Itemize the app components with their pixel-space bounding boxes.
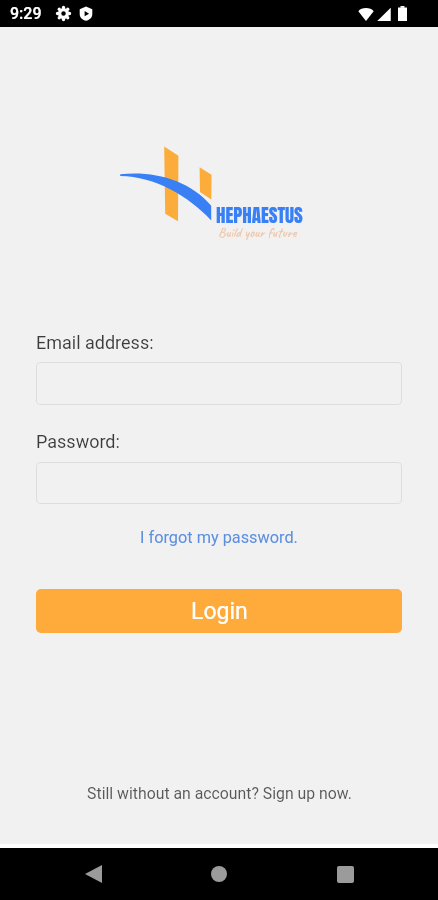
button[interactable]: Back bbox=[30, 848, 156, 900]
staticText: Password: bbox=[36, 431, 120, 452]
button[interactable] bbox=[36, 462, 402, 504]
staticText: Build your future bbox=[218, 224, 297, 242]
button[interactable]: Still without an account? Sign up now. bbox=[79, 780, 360, 807]
button[interactable] bbox=[36, 362, 402, 405]
staticText: Login bbox=[191, 598, 248, 625]
staticText: HEPHAESTUS bbox=[216, 201, 303, 230]
staticText: Email address: bbox=[36, 332, 154, 353]
button[interactable]: Home bbox=[156, 848, 282, 900]
button[interactable]: Login bbox=[36, 589, 402, 633]
button[interactable]: I forgot my password. bbox=[132, 524, 306, 551]
staticText: 9:29 bbox=[10, 4, 42, 23]
button[interactable]: Recent apps bbox=[282, 848, 408, 900]
